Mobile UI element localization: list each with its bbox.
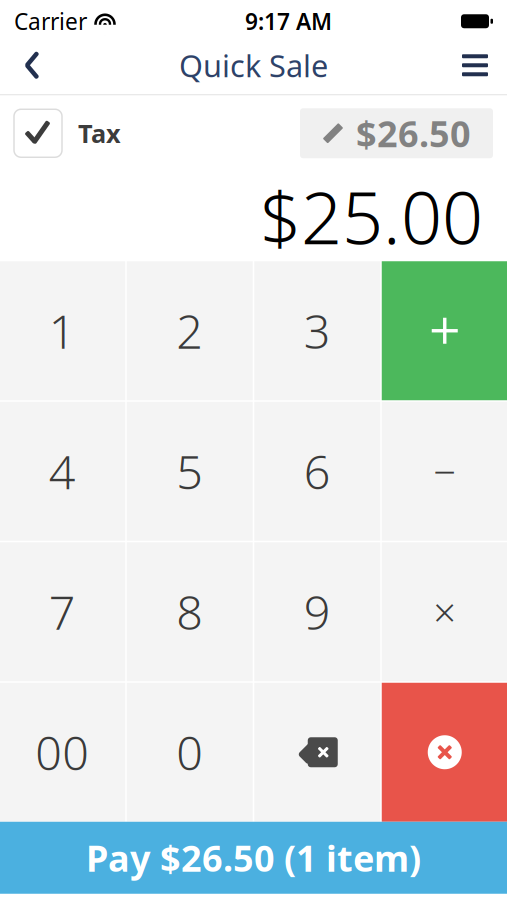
button[interactable]: 5 [127, 402, 253, 541]
staticText: Quick Sale [179, 45, 328, 86]
button[interactable]: Clear [382, 683, 507, 822]
button[interactable]: Add [382, 261, 507, 400]
button[interactable]: − [382, 402, 507, 541]
button[interactable]: 00 [0, 683, 125, 822]
button[interactable]: 9 [254, 542, 380, 681]
staticText: 0 [176, 721, 203, 783]
button[interactable]: Back [4, 36, 60, 94]
button[interactable]: 7 [0, 542, 125, 681]
staticText: 7 [49, 581, 76, 643]
button[interactable]: × [382, 542, 507, 681]
staticText: 9 [304, 581, 331, 643]
staticText: $25.00 [260, 168, 483, 264]
button[interactable]: Menu [447, 36, 503, 94]
button[interactable]: 1 [0, 261, 125, 400]
button[interactable]: 8 [127, 542, 253, 681]
button[interactable]: 4 [0, 402, 125, 541]
button[interactable]: 2 [127, 261, 253, 400]
button[interactable]: Tax [14, 109, 121, 157]
staticText: $26.50 [356, 109, 471, 157]
staticText: Pay $26.50 (1 item) [86, 834, 421, 882]
button[interactable]: Pay $26.50 (1 item) [0, 822, 507, 894]
staticText: 1 [49, 300, 76, 362]
staticText: Tax [78, 116, 121, 150]
button[interactable]: 3 [254, 261, 380, 400]
staticText: 5 [176, 440, 203, 502]
staticText: × [433, 585, 456, 638]
staticText: 4 [49, 440, 76, 502]
staticText: 8 [176, 581, 203, 643]
button[interactable]: 6 [254, 402, 380, 541]
button[interactable]: $26.50 [300, 108, 493, 158]
staticText: 2 [176, 300, 203, 362]
staticText: − [433, 445, 456, 498]
staticText: Carrier [14, 6, 87, 36]
staticText: 9:17 AM [245, 6, 332, 36]
staticText: 6 [304, 440, 331, 502]
staticText: 3 [304, 300, 331, 362]
button[interactable]: 0 [127, 683, 253, 822]
button[interactable]: Delete [254, 683, 380, 822]
staticText: 00 [35, 721, 89, 783]
